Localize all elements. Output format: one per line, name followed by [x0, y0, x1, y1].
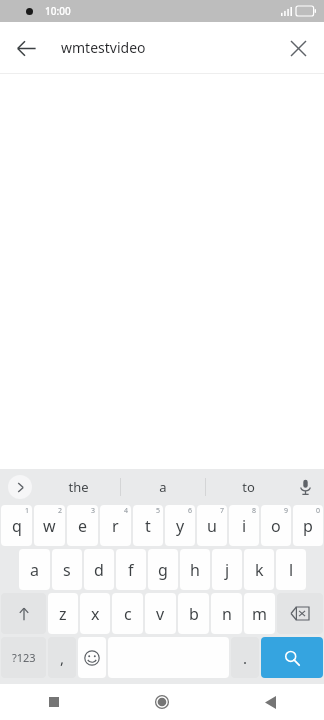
button[interactable]: j	[212, 549, 242, 590]
button[interactable]: to	[206, 469, 290, 505]
staticText: w	[43, 515, 56, 537]
button[interactable]: p	[293, 505, 323, 546]
staticText: 6	[188, 506, 193, 516]
staticText: m	[252, 603, 267, 625]
button[interactable]: s	[52, 549, 82, 590]
staticText: ,	[60, 648, 65, 668]
button[interactable]: m	[244, 593, 275, 634]
button[interactable]: Back	[216, 684, 324, 720]
staticText: f	[128, 559, 134, 581]
button[interactable]: l	[276, 549, 306, 590]
button[interactable]: c	[112, 593, 143, 634]
staticText: a	[30, 559, 39, 581]
button[interactable]: k	[244, 549, 274, 590]
staticText: v	[156, 603, 165, 625]
staticText: r	[112, 515, 119, 537]
button[interactable]: Emoji	[78, 637, 106, 678]
staticText: .	[243, 648, 248, 668]
staticText: ?123	[12, 650, 36, 665]
button[interactable]: r	[100, 505, 131, 546]
button[interactable]: u	[197, 505, 227, 546]
staticText: wmtestvideo	[61, 38, 146, 57]
button[interactable]: i	[229, 505, 259, 546]
staticText: 0	[316, 506, 321, 516]
button[interactable]: Back	[6, 28, 46, 68]
staticText: c	[124, 603, 132, 625]
staticText: k	[255, 559, 264, 581]
button[interactable]: Home	[108, 684, 216, 720]
staticText: h	[190, 559, 200, 581]
staticText: t	[145, 515, 151, 537]
staticText: 9	[284, 506, 289, 516]
staticText: b	[189, 603, 199, 625]
button[interactable]: y	[165, 505, 195, 546]
staticText: 4	[124, 506, 129, 516]
button[interactable]: Recent apps	[0, 684, 108, 720]
button[interactable]: Backspace	[277, 593, 323, 634]
staticText: x	[91, 603, 100, 625]
staticText: d	[94, 559, 104, 581]
button[interactable]: Clear	[278, 28, 318, 68]
staticText: 2	[58, 506, 63, 516]
staticText: 10:00	[45, 4, 71, 18]
button[interactable]: o	[261, 505, 291, 546]
button[interactable]: ?123	[1, 637, 46, 678]
button[interactable]: h	[180, 549, 210, 590]
button[interactable]: q	[1, 505, 32, 546]
staticText: 8	[252, 506, 257, 516]
button[interactable]: t	[133, 505, 163, 546]
button[interactable]: a	[19, 549, 50, 590]
button[interactable]: More	[8, 475, 32, 499]
staticText: s	[63, 559, 71, 581]
button[interactable]: Voice input	[292, 474, 318, 500]
staticText: 5	[156, 506, 161, 516]
button[interactable]: w	[34, 505, 65, 546]
staticText: q	[12, 515, 22, 537]
staticText: n	[222, 603, 232, 625]
staticText: 7	[220, 506, 225, 516]
button[interactable]: the	[36, 469, 120, 505]
staticText: o	[271, 515, 281, 537]
staticText: the	[68, 478, 89, 496]
staticText: g	[158, 559, 168, 581]
staticText: 1	[25, 506, 30, 516]
button[interactable]: a	[121, 469, 205, 505]
button[interactable]: Comma	[48, 637, 76, 678]
staticText: 3	[91, 506, 96, 516]
staticText: u	[207, 515, 217, 537]
staticText: l	[289, 559, 294, 581]
button[interactable]: b	[178, 593, 209, 634]
button[interactable]: f	[116, 549, 146, 590]
button[interactable]: g	[148, 549, 178, 590]
button[interactable]: n	[211, 593, 242, 634]
staticText: a	[159, 478, 167, 496]
button[interactable]: x	[80, 593, 110, 634]
staticText: to	[242, 478, 255, 496]
button[interactable]: z	[48, 593, 78, 634]
button[interactable]: d	[84, 549, 114, 590]
button[interactable]: Shift	[1, 593, 46, 634]
staticText: i	[242, 515, 247, 537]
staticText: p	[303, 515, 313, 537]
staticText: y	[176, 515, 185, 537]
button[interactable]: v	[145, 593, 176, 634]
staticText: e	[78, 515, 88, 537]
button[interactable]: Period	[231, 637, 259, 678]
button[interactable]: e	[67, 505, 98, 546]
staticText: j	[225, 559, 230, 581]
staticText: z	[59, 603, 67, 625]
button[interactable]: Search	[261, 637, 323, 678]
